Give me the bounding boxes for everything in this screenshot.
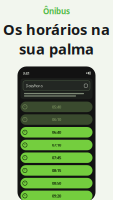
- button[interactable]: 07:45: [20, 152, 92, 163]
- button[interactable]: Selecionar data e hora: [23, 81, 90, 90]
- staticText: 08:50: [52, 180, 61, 186]
- button[interactable]: 08:50: [20, 178, 92, 188]
- staticText: Ônibus: [43, 6, 70, 16]
- staticText: sua palma: [19, 39, 94, 58]
- staticText: Data/hora: [25, 83, 42, 88]
- staticText: 9:41: [22, 70, 29, 76]
- staticText: 09:20: [52, 193, 61, 198]
- staticText: 05:40: [52, 104, 61, 109]
- staticText: 07:10: [52, 142, 61, 148]
- button[interactable]: 07:10: [20, 140, 92, 150]
- staticText: 08:15: [52, 168, 61, 173]
- button[interactable]: 06:40: [20, 127, 92, 137]
- staticText: 07:45: [52, 155, 61, 160]
- button[interactable]: 08:15: [20, 165, 92, 176]
- staticText: 06:10: [52, 117, 61, 122]
- button[interactable]: 06:10: [20, 114, 92, 125]
- staticText: Os horários na: [3, 19, 110, 39]
- button[interactable]: 09:20: [20, 191, 92, 200]
- staticText: 06:40: [52, 130, 61, 135]
- button[interactable]: 05:40: [20, 102, 92, 112]
